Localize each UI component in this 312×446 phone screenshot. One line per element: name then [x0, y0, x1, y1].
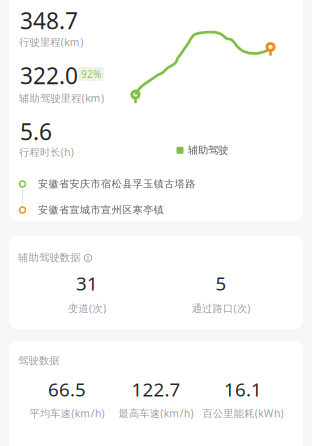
staticText: 辅助驾驶数据 [18, 251, 80, 264]
staticText: 行程时长(h) [19, 145, 74, 159]
staticText: 辅助驾驶里程(km) [19, 91, 104, 105]
staticText: 66.5 [48, 377, 86, 402]
staticText: 最高车速(km/h) [118, 406, 194, 420]
staticText: 变道(次) [68, 301, 106, 315]
staticText: 百公里能耗(kWh) [202, 406, 284, 420]
staticText: 92% [81, 67, 101, 81]
staticText: 322.0 [20, 60, 78, 91]
staticText: 5 [215, 271, 226, 296]
staticText: 安徽省安庆市宿松县孚玉镇古塔路 [38, 178, 195, 190]
staticText: 16.1 [224, 377, 262, 402]
staticText: 驾驶数据 [18, 354, 59, 367]
staticText: 31 [76, 271, 98, 296]
staticText: 通过路口(次) [192, 301, 250, 315]
staticText: 行驶里程(km) [19, 35, 83, 49]
staticText: 安徽省宣城市宣州区寒亭镇 [38, 204, 164, 216]
staticText: 平均车速(km/h) [29, 406, 105, 420]
staticText: 5.6 [20, 116, 52, 147]
staticText: 348.7 [20, 5, 78, 36]
staticText: 122.7 [131, 377, 180, 402]
staticText: 辅助驾驶 [188, 143, 228, 156]
